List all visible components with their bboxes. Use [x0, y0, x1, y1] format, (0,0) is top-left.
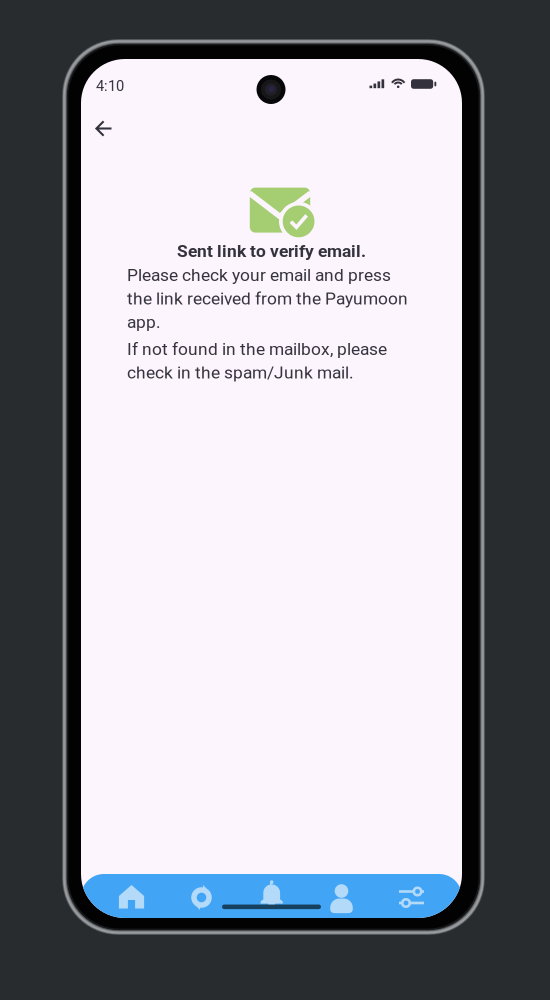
staticText: If not found in the mailbox, please — [127, 339, 387, 359]
staticText: Please check your email and press — [127, 265, 391, 285]
button[interactable]: Home — [105, 874, 157, 920]
button[interactable]: Notifications — [245, 874, 297, 920]
staticText: the link received from the Payumoon — [127, 288, 408, 309]
button[interactable]: Profile — [315, 874, 367, 920]
button[interactable]: Back — [82, 108, 124, 148]
button[interactable]: Settings — [385, 874, 437, 920]
button[interactable]: Explore — [175, 874, 227, 920]
staticText: 4:10 — [96, 77, 124, 95]
staticText: Sent link to verify email. — [177, 241, 366, 261]
staticText: check in the spam/Junk mail. — [127, 362, 354, 383]
staticText: app. — [127, 312, 161, 332]
